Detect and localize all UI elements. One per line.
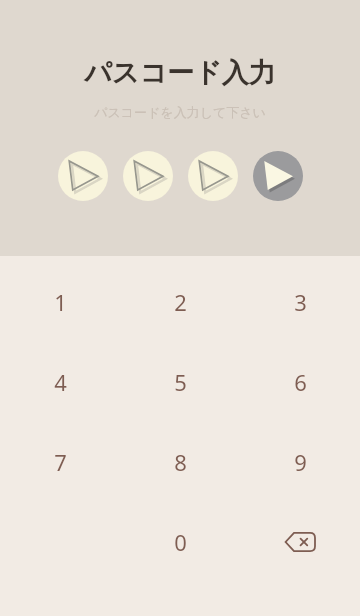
staticText: パスコード入力 <box>84 56 276 90</box>
button[interactable]: 7 <box>0 422 120 502</box>
staticText: 3 <box>294 287 307 317</box>
button[interactable]: Entered digit <box>253 151 303 201</box>
staticText: 6 <box>294 367 307 397</box>
button[interactable]: 4 <box>0 342 120 422</box>
button[interactable]: 1 <box>0 262 120 342</box>
button[interactable]: 0 <box>120 502 240 582</box>
button[interactable]: 9 <box>240 422 360 502</box>
staticText: 7 <box>54 447 67 477</box>
staticText: 5 <box>174 367 187 397</box>
button[interactable]: 8 <box>120 422 240 502</box>
button[interactable]: 6 <box>240 342 360 422</box>
button[interactable]: 3 <box>240 262 360 342</box>
staticText: 1 <box>54 287 67 317</box>
button[interactable]: Empty digit <box>188 151 238 201</box>
staticText: 8 <box>174 447 187 477</box>
staticText: 4 <box>54 367 67 397</box>
button[interactable]: Delete <box>240 502 360 582</box>
staticText: パスコードを入力して下さい <box>94 104 266 120</box>
staticText: 0 <box>174 527 187 557</box>
button[interactable]: Empty digit <box>58 151 108 201</box>
staticText: 9 <box>294 447 307 477</box>
button[interactable]: 5 <box>120 342 240 422</box>
button[interactable]: Empty digit <box>123 151 173 201</box>
staticText: 2 <box>174 287 187 317</box>
button[interactable]: 2 <box>120 262 240 342</box>
